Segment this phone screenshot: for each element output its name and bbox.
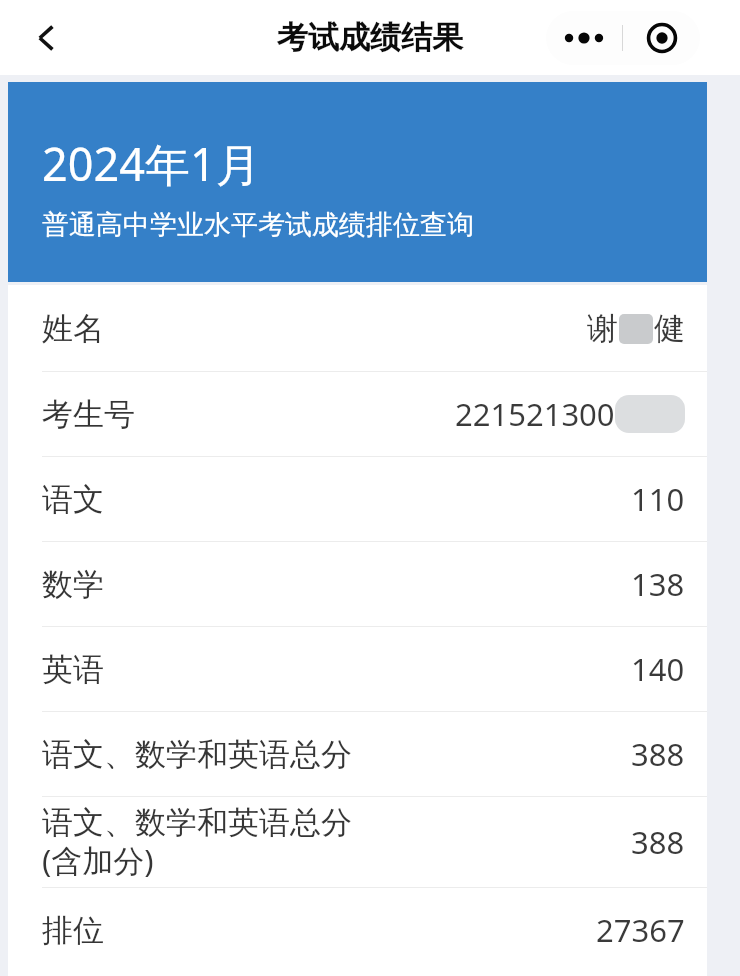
staticText: 普通高中学业水平考试成绩排位查询 <box>42 208 474 242</box>
button[interactable]: 数学 <box>8 542 707 626</box>
staticText: 140 <box>631 648 685 690</box>
staticText: 388 <box>631 733 685 775</box>
staticText: 语文、数学和英语总分 (含加分) <box>42 803 352 881</box>
staticText: 2024年1月 <box>42 133 261 194</box>
staticText: 考生号 <box>42 395 135 434</box>
staticText: 数学 <box>42 565 104 604</box>
button[interactable]: 语文、数学和英语总分 <box>8 712 707 796</box>
button[interactable]: 2024年1月 <box>8 82 707 282</box>
staticText: 英语 <box>42 650 104 689</box>
staticText: 27367 <box>596 909 685 951</box>
staticText: 138 <box>631 563 685 605</box>
button[interactable]: 姓名 <box>8 285 707 371</box>
staticText: 排位 <box>42 911 104 950</box>
button[interactable]: 考生号 <box>8 372 707 456</box>
staticText: 谢 <box>587 309 618 348</box>
staticText: 110 <box>631 478 685 520</box>
staticText: 388 <box>631 821 685 863</box>
button[interactable]: 排位 <box>8 888 707 972</box>
button[interactable]: 语文、数学和英语总分 (含加分) <box>8 797 707 887</box>
staticText: 语文 <box>42 480 104 519</box>
staticText: 考试成绩结果 <box>277 18 463 57</box>
button[interactable]: Back <box>18 9 76 67</box>
button[interactable]: 英语 <box>8 627 707 711</box>
staticText: 姓名 <box>42 309 104 348</box>
button[interactable]: Close <box>623 11 700 65</box>
button[interactable]: More <box>546 11 622 65</box>
button[interactable]: 语文 <box>8 457 707 541</box>
staticText: 健 <box>654 309 685 348</box>
staticText: 语文、数学和英语总分 <box>42 735 352 774</box>
staticText: 221521300 <box>455 393 615 435</box>
